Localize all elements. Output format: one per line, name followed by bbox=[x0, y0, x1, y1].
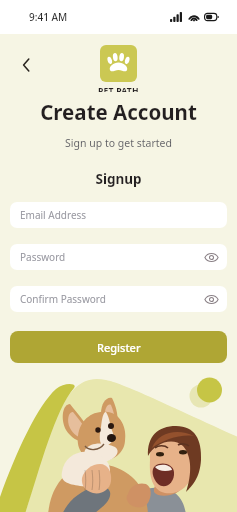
staticText: Email Address bbox=[20, 208, 87, 222]
button[interactable]: Email Address bbox=[10, 202, 227, 228]
button[interactable]: Back bbox=[18, 56, 36, 74]
button[interactable]: Toggle password visibility bbox=[204, 292, 219, 307]
staticText: Signup bbox=[0, 170, 237, 188]
staticText: Create Account bbox=[0, 98, 237, 126]
button[interactable]: Password bbox=[10, 244, 227, 270]
staticText: Confirm Password bbox=[20, 292, 106, 306]
staticText: PET PATH bbox=[98, 85, 139, 92]
button[interactable]: Toggle password visibility bbox=[204, 250, 219, 265]
button[interactable]: Confirm Password bbox=[10, 286, 227, 312]
staticText: Sign up to get started bbox=[0, 136, 237, 150]
staticText: 9:41 AM bbox=[29, 10, 68, 24]
staticText: Register bbox=[97, 340, 141, 355]
button[interactable]: Register bbox=[10, 331, 227, 363]
staticText: Password bbox=[20, 250, 66, 264]
